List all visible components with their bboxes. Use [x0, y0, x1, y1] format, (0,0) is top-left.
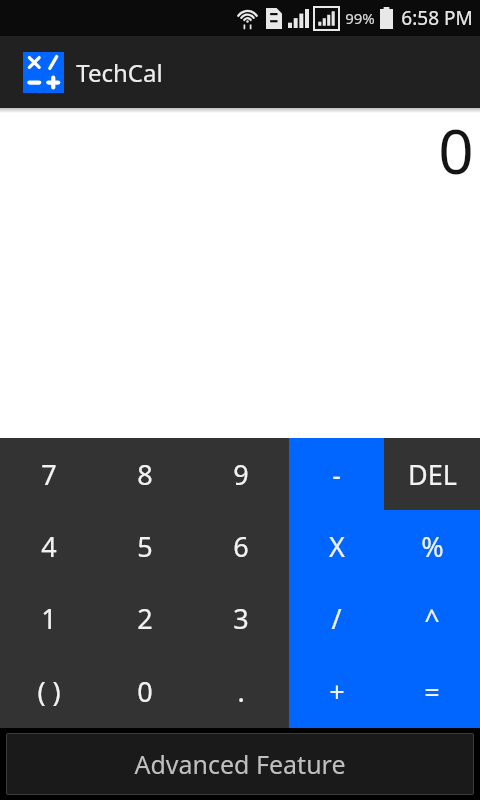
button[interactable]: 5 — [97, 510, 193, 582]
staticText: TechCal — [76, 56, 163, 89]
staticText: 6 — [233, 528, 249, 565]
staticText: X — [329, 528, 345, 565]
button[interactable]: 7 — [0, 438, 97, 510]
button[interactable]: / — [289, 582, 384, 655]
staticText: 4 — [41, 528, 57, 565]
button[interactable]: ( ) — [0, 655, 97, 728]
button[interactable]: 9 — [193, 438, 289, 510]
staticText: 7 — [41, 456, 57, 493]
staticText: ^ — [424, 600, 440, 637]
staticText: DEL — [408, 456, 457, 493]
button[interactable]: = — [384, 655, 480, 728]
button[interactable]: . — [193, 655, 289, 728]
button[interactable]: 0 — [97, 655, 193, 728]
staticText: - — [332, 456, 341, 493]
button[interactable]: X — [289, 510, 384, 582]
button[interactable]: 6 — [193, 510, 289, 582]
button[interactable]: ^ — [384, 582, 480, 655]
staticText: = — [424, 673, 440, 710]
button[interactable]: - — [289, 438, 384, 510]
staticText: Advanced Feature — [134, 747, 346, 781]
staticText: 2 — [137, 600, 153, 637]
staticText: / — [331, 600, 342, 637]
button[interactable]: 4 — [0, 510, 97, 582]
other: TechCal app icon — [23, 52, 64, 93]
button[interactable]: 3 — [193, 582, 289, 655]
staticText: 8 — [137, 456, 153, 493]
button[interactable]: + — [289, 655, 384, 728]
button[interactable]: 1 — [0, 582, 97, 655]
staticText: ( ) — [37, 673, 61, 710]
button[interactable]: Advanced Feature — [6, 733, 474, 795]
button[interactable]: 2 — [97, 582, 193, 655]
staticText: % — [421, 528, 444, 565]
staticText: 99% — [345, 8, 375, 28]
staticText: 0 — [137, 673, 153, 710]
button[interactable]: % — [384, 510, 480, 582]
staticText: 0 — [438, 108, 474, 192]
staticText: 6:58 PM — [401, 5, 473, 31]
button[interactable]: 8 — [97, 438, 193, 510]
button[interactable]: DEL — [384, 438, 480, 510]
staticText: 9 — [233, 456, 249, 493]
staticText: . — [237, 673, 245, 710]
staticText: 3 — [233, 600, 249, 637]
staticText: + — [329, 673, 345, 710]
staticText: 5 — [137, 528, 153, 565]
staticText: 1 — [41, 600, 57, 637]
